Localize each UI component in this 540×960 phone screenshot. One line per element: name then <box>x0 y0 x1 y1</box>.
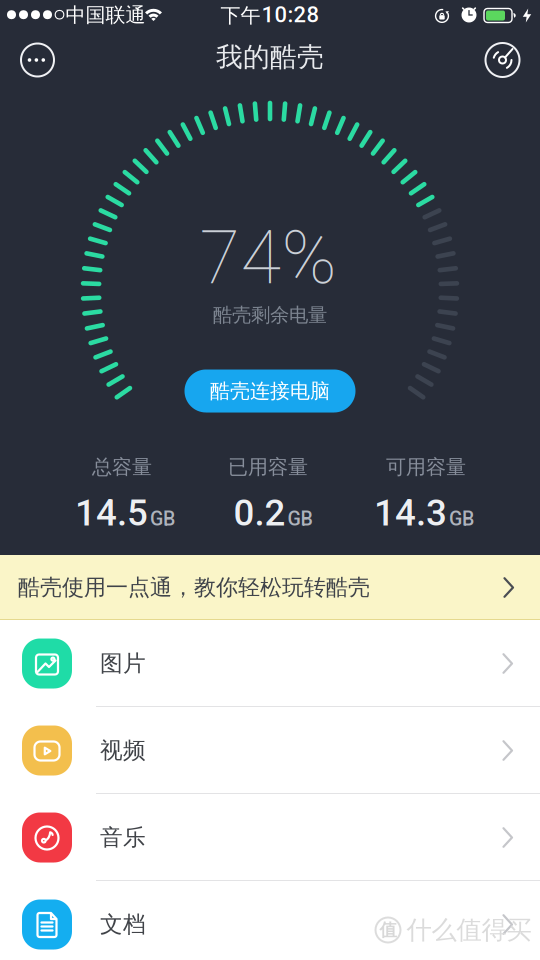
button[interactable]: 图片 <box>0 620 540 707</box>
staticText: 酷壳连接电脑 <box>210 378 330 404</box>
staticText: 下午 <box>220 3 260 28</box>
button[interactable]: 音乐 <box>0 794 540 881</box>
staticText: 我的酷壳 <box>216 40 324 74</box>
staticText: 0.2 <box>233 491 285 534</box>
staticText: 74% <box>199 215 336 301</box>
button[interactable]: 更多 <box>21 43 54 76</box>
button[interactable]: 酷壳使用一点通，教你轻松玩转酷壳 <box>0 555 540 620</box>
staticText: 图片 <box>100 649 146 678</box>
staticText: 14.3 <box>374 491 447 534</box>
staticText: 已用容量 <box>228 454 308 480</box>
staticText: 酷壳剩余电量 <box>213 303 327 327</box>
staticText: 10:28 <box>261 2 319 28</box>
button[interactable]: 视频 <box>0 707 540 794</box>
staticText: 视频 <box>100 736 146 765</box>
staticText: 什么值得买 <box>406 914 531 946</box>
staticText: 值 <box>379 919 396 941</box>
staticText: GB <box>150 507 175 530</box>
staticText: 酷壳使用一点通，教你轻松玩转酷壳 <box>18 574 370 601</box>
staticText: GB <box>287 507 312 530</box>
staticText: 音乐 <box>100 823 146 852</box>
button[interactable]: 酷壳连接电脑 <box>184 369 355 412</box>
button[interactable]: 文档 <box>0 881 540 960</box>
staticText: 可用容量 <box>386 454 466 480</box>
staticText: 中国联通 <box>65 2 145 28</box>
staticText: GB <box>449 507 474 530</box>
staticText: 14.5 <box>75 491 148 534</box>
staticText: 总容量 <box>92 454 152 480</box>
button[interactable]: 测速 <box>485 43 519 77</box>
staticText: 文档 <box>100 910 146 939</box>
